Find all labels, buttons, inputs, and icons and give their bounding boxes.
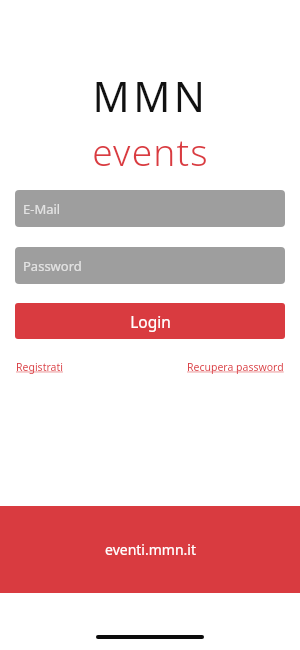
button[interactable]: Login xyxy=(15,303,285,339)
button[interactable]: eventi.mmn.it xyxy=(0,506,300,593)
staticText: Login xyxy=(130,311,171,332)
staticText: events xyxy=(92,126,209,176)
button[interactable]: E-Mail xyxy=(15,190,285,227)
button[interactable]: Registrati xyxy=(16,360,63,374)
staticText: eventi.mmn.it xyxy=(105,540,196,559)
staticText: Recupera password xyxy=(187,360,284,374)
staticText: Registrati xyxy=(16,360,63,374)
staticText: MMN xyxy=(92,68,209,124)
staticText: Password xyxy=(23,257,82,275)
staticText: E-Mail xyxy=(23,200,61,218)
button[interactable]: Password xyxy=(15,247,285,284)
other: Home indicator xyxy=(96,635,204,639)
button[interactable]: Recupera password xyxy=(187,360,284,374)
